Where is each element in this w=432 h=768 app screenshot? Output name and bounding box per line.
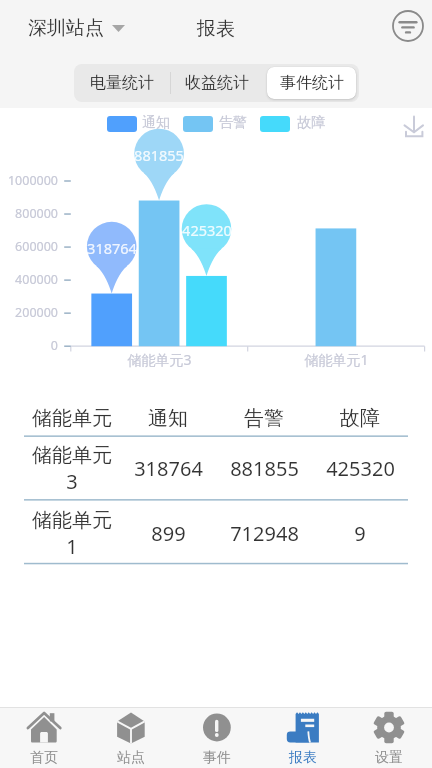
staticText: 储能单元 3 <box>32 443 112 494</box>
staticText: 站点 <box>117 749 145 767</box>
staticText: 储能单元3 <box>127 350 192 369</box>
staticText: 储能单元 <box>32 406 112 431</box>
staticText: 318764 <box>87 238 137 258</box>
staticText: 600000 <box>15 238 58 255</box>
staticText: 告警 <box>219 114 247 132</box>
staticText: 深圳站点 <box>28 16 104 40</box>
button[interactable]: 电量统计 <box>77 67 166 99</box>
staticText: 9 <box>354 520 366 547</box>
staticText: 318764 <box>134 455 203 482</box>
staticText: 储能单元 1 <box>32 508 112 559</box>
staticText: 425320 <box>326 455 395 482</box>
staticText: 通知 <box>142 114 170 132</box>
button[interactable]: 事件 <box>174 708 260 768</box>
button[interactable]: 站点 <box>87 708 174 768</box>
staticText: 报表 <box>289 749 317 767</box>
staticText: 899 <box>151 520 186 547</box>
staticText: 0 <box>50 337 58 354</box>
staticText: 800000 <box>15 205 58 222</box>
button[interactable]: 收益统计 <box>172 67 261 99</box>
staticText: 收益统计 <box>185 73 249 93</box>
staticText: 设置 <box>375 749 403 767</box>
button[interactable]: 深圳站点 <box>20 9 133 47</box>
staticText: 事件 <box>203 749 231 767</box>
button[interactable]: 事件统计 <box>267 67 356 99</box>
button[interactable]: 首页 <box>0 708 87 768</box>
staticText: 储能单元1 <box>304 350 369 369</box>
staticText: 事件统计 <box>280 73 344 93</box>
staticText: 881855 <box>230 455 299 482</box>
staticText: 通知 <box>148 406 188 431</box>
staticText: 报表 <box>197 17 235 41</box>
staticText: 425320 <box>182 220 232 240</box>
button[interactable]: 设置 <box>346 708 432 768</box>
staticText: 881855 <box>134 145 184 165</box>
staticText: 首页 <box>30 749 58 767</box>
button[interactable]: 筛选 <box>386 4 430 48</box>
staticText: 400000 <box>15 271 58 288</box>
staticText: 电量统计 <box>90 73 154 93</box>
staticText: 故障 <box>340 406 380 431</box>
staticText: 故障 <box>297 114 325 132</box>
staticText: 712948 <box>230 520 299 547</box>
staticText: 告警 <box>244 406 284 431</box>
staticText: 200000 <box>15 304 58 321</box>
staticText: 1000000 <box>7 172 58 189</box>
button[interactable]: 下载 <box>393 105 432 147</box>
button[interactable]: 报表 <box>260 708 346 768</box>
